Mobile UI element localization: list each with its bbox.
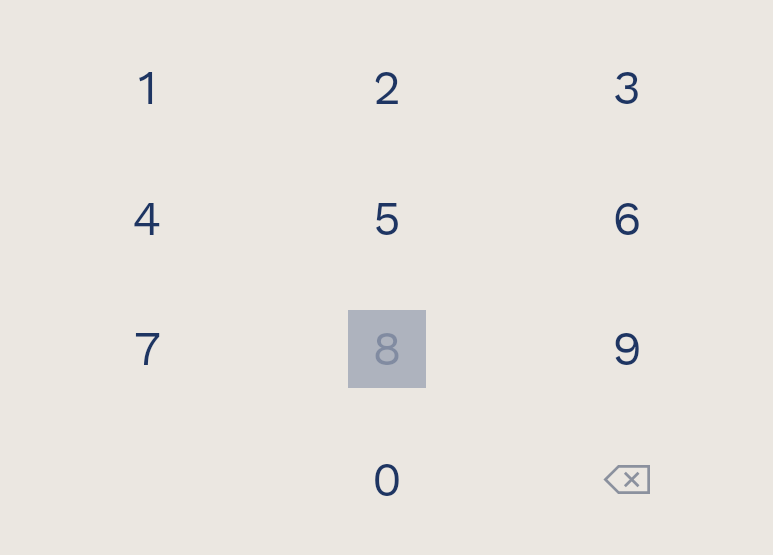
button[interactable]: 5 — [312, 158, 462, 278]
staticText: 7 — [134, 320, 161, 376]
staticText: 0 — [372, 451, 402, 507]
button[interactable]: 4 — [72, 158, 222, 278]
button[interactable]: 3 — [552, 27, 702, 147]
staticText: 8 — [372, 320, 402, 376]
button[interactable]: 0 — [312, 419, 462, 539]
staticText: 3 — [613, 59, 641, 115]
button[interactable]: 8 — [312, 288, 462, 408]
staticText: 2 — [373, 59, 401, 115]
button[interactable]: 1 — [72, 27, 222, 147]
staticText: 5 — [373, 190, 401, 246]
staticText: 4 — [132, 190, 162, 246]
button[interactable]: 7 — [72, 288, 222, 408]
button[interactable]: 2 — [312, 27, 462, 147]
button[interactable]: 9 — [552, 288, 702, 408]
staticText: 6 — [612, 190, 642, 246]
button[interactable]: Backspace — [552, 419, 702, 539]
staticText: 1 — [138, 59, 157, 115]
button[interactable]: 6 — [552, 158, 702, 278]
staticText: 9 — [612, 320, 642, 376]
